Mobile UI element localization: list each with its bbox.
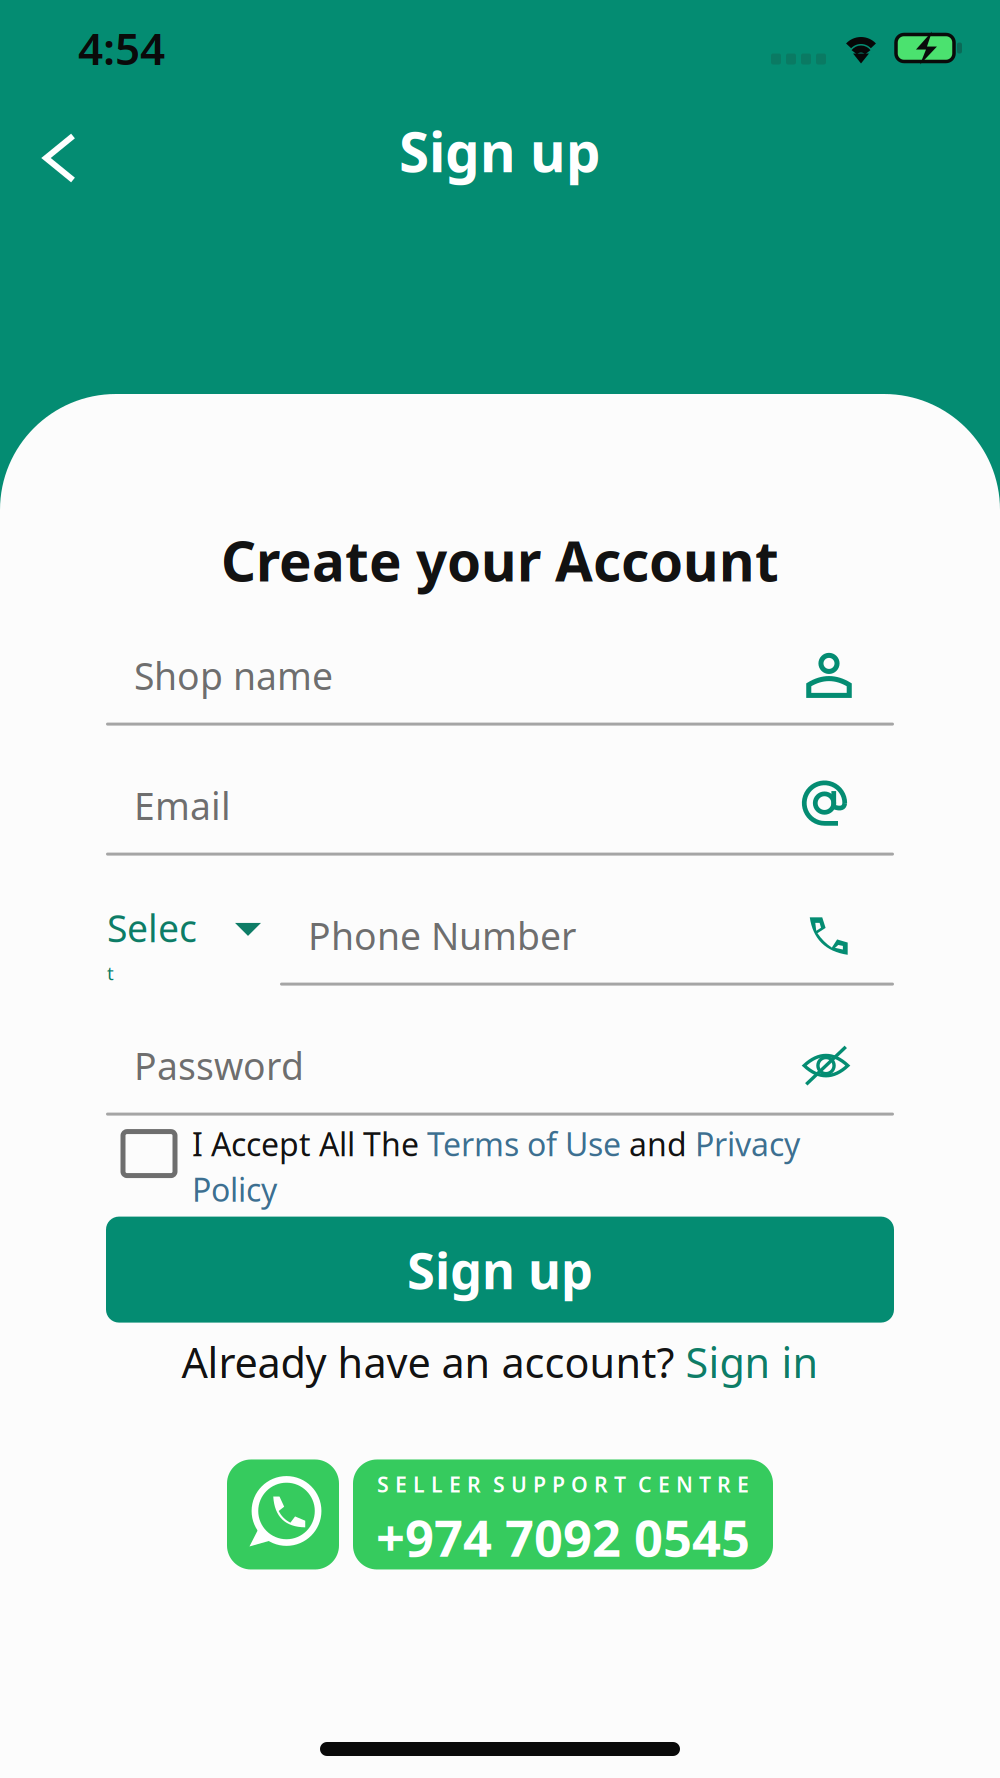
button[interactable]: Selec: [106, 890, 280, 984]
button[interactable]: Back: [0, 108, 101, 194]
staticText: Password: [134, 1041, 304, 1090]
staticText: Create your Account: [221, 524, 779, 597]
button[interactable]: Sign in: [685, 1335, 818, 1389]
staticText: +974 7092 0545: [376, 1503, 750, 1571]
staticText: and: [621, 1123, 695, 1165]
staticText: Shop name: [134, 651, 333, 700]
staticText: Terms of Use: [427, 1123, 621, 1165]
staticText: t: [107, 960, 114, 985]
staticText: Policy: [192, 1168, 277, 1211]
staticText: Sign in: [685, 1335, 818, 1389]
staticText: Phone Number: [308, 911, 576, 960]
staticText: S E L L E R S U P P O R T C E N T R E: [377, 1470, 749, 1498]
button[interactable]: WhatsApp: [227, 1459, 339, 1569]
staticText: Sign up: [399, 115, 601, 187]
staticText: I Accept All The: [192, 1123, 427, 1165]
button[interactable]: Sign up: [106, 1217, 894, 1323]
staticText: 4:54: [78, 19, 165, 77]
staticText: Privacy: [695, 1123, 800, 1165]
staticText: Sign up: [407, 1236, 593, 1303]
staticText: Email: [134, 781, 231, 830]
staticText: Selec: [107, 903, 197, 952]
button[interactable]: I Accept All The: [106, 1123, 894, 1209]
button[interactable]: S E L L E R S U P P O R T C E N T R E: [353, 1459, 773, 1569]
staticText: Already have an account?: [181, 1335, 685, 1389]
